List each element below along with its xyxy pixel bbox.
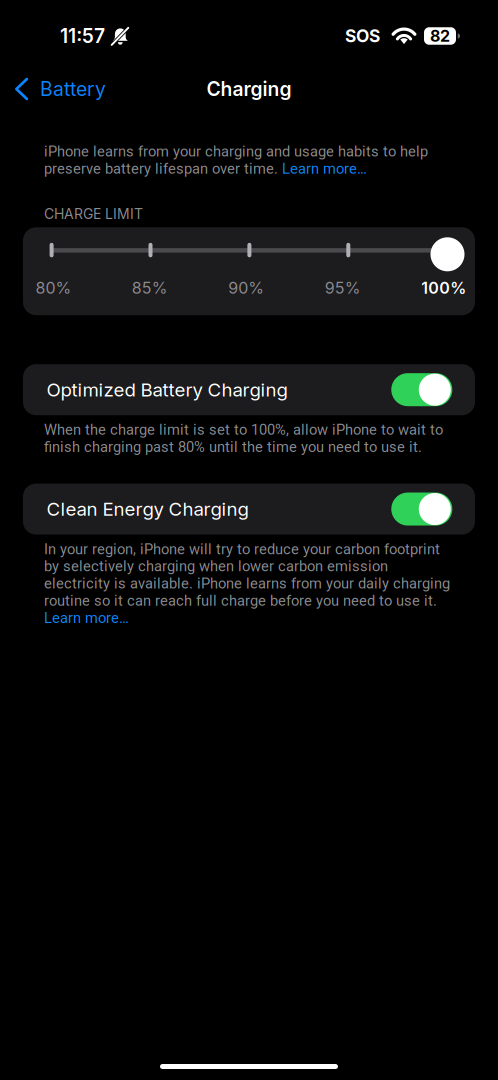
staticText: iPhone learns from your charging and usa… xyxy=(44,143,428,177)
button[interactable]: Battery xyxy=(0,70,106,108)
staticText: 11:57 xyxy=(60,24,105,48)
staticText: 85% xyxy=(132,278,168,298)
staticText: Optimized Battery Charging xyxy=(46,378,287,401)
staticText: 80% xyxy=(35,278,71,298)
staticText: In your region, iPhone will try to reduc… xyxy=(44,541,450,626)
staticText: 90% xyxy=(228,278,264,298)
button[interactable]: Optimized Battery Charging xyxy=(23,364,475,415)
button[interactable]: Clean Energy Charging xyxy=(23,484,475,535)
staticText: Battery xyxy=(40,77,106,101)
staticText: 95% xyxy=(325,278,361,298)
staticText: Clean Energy Charging xyxy=(46,498,248,520)
staticText: SOS xyxy=(345,25,380,46)
staticText: CHARGE LIMIT xyxy=(44,205,143,222)
staticText: 100% xyxy=(421,278,466,298)
staticText: Charging xyxy=(206,77,291,101)
staticText: 82 xyxy=(430,26,450,46)
staticText: When the charge limit is set to 100%, al… xyxy=(44,421,443,456)
